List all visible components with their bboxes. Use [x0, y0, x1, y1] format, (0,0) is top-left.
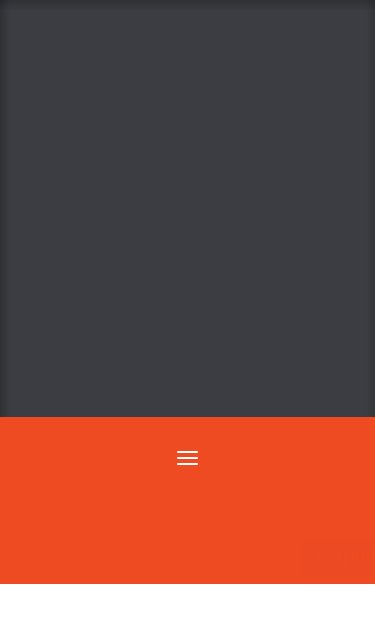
- button[interactable]: Open navigation menu: [167, 441, 208, 475]
